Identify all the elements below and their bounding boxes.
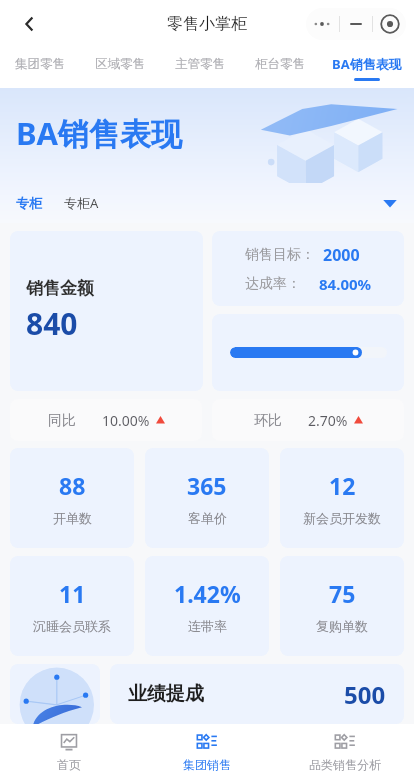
staticText: 840 [26,303,78,344]
button[interactable]: 首页 [0,724,138,780]
staticText: 业绩提成 [128,682,204,706]
button[interactable] [212,314,404,391]
staticText: 2.70% [308,411,348,430]
button[interactable]: 品类销售分析 [276,724,414,780]
button[interactable]: 环比 [212,399,404,441]
staticText: 新会员开发数 [303,510,381,526]
button[interactable]: 主管零售 [160,48,240,88]
staticText: 500 [344,678,386,711]
button[interactable]: 75 [280,556,404,656]
staticText: 2000 [323,244,360,266]
staticText: 10.00% [102,411,150,430]
button[interactable]: 销售金额 [10,231,203,391]
staticText: 柜台零售 [255,56,305,72]
button[interactable]: 11 [10,556,134,656]
staticText: 沉睡会员联系 [33,618,111,634]
staticText: 首页 [57,757,81,772]
staticText: 环比 [254,412,282,430]
staticText: 365 [187,470,227,501]
staticText: BA销售表现 [16,112,183,154]
button[interactable]: 集团零售 [0,48,80,88]
staticText: 88 [59,470,86,501]
staticText: 同比 [48,412,76,430]
button[interactable]: 12 [280,448,404,548]
staticText: 主管零售 [175,56,225,72]
staticText: 集团零售 [15,56,65,72]
staticText: 12 [329,470,356,501]
button[interactable]: 专柜 [0,183,414,223]
button[interactable]: 集团销售 [138,724,276,780]
button[interactable]: 88 [10,448,134,548]
staticText: 达成率： [245,275,301,293]
button[interactable]: 1.42% [145,556,269,656]
button[interactable]: Performance illustration [10,664,100,724]
staticText: 开单数 [53,510,92,526]
staticText: 专柜 [16,195,42,211]
staticText: 复购单数 [316,618,368,634]
button[interactable]: BA销售表现 [320,48,414,88]
button[interactable]: 销售目标： [212,231,404,306]
button[interactable]: Back [10,4,50,44]
button[interactable]: 365 [145,448,269,548]
staticText: 11 [59,578,86,609]
button[interactable]: 同比 [10,399,202,441]
staticText: 集团销售 [183,757,231,772]
staticText: 1.42% [174,578,241,609]
staticText: 75 [329,578,356,609]
staticText: 区域零售 [95,56,145,72]
staticText: BA销售表现 [332,55,402,73]
staticText: 零售小掌柜 [167,14,247,34]
button[interactable]: 业绩提成 [110,664,404,724]
staticText: 销售金额 [26,278,94,299]
staticText: 84.00% [319,274,372,294]
staticText: 客单价 [188,510,227,526]
staticText: 连带率 [188,618,227,634]
button[interactable]: Mini program menu [306,8,406,40]
button[interactable]: 区域零售 [80,48,160,88]
button[interactable]: 柜台零售 [240,48,320,88]
staticText: 销售目标： [245,246,315,264]
staticText: 专柜A [64,194,99,212]
staticText: 品类销售分析 [309,757,381,772]
